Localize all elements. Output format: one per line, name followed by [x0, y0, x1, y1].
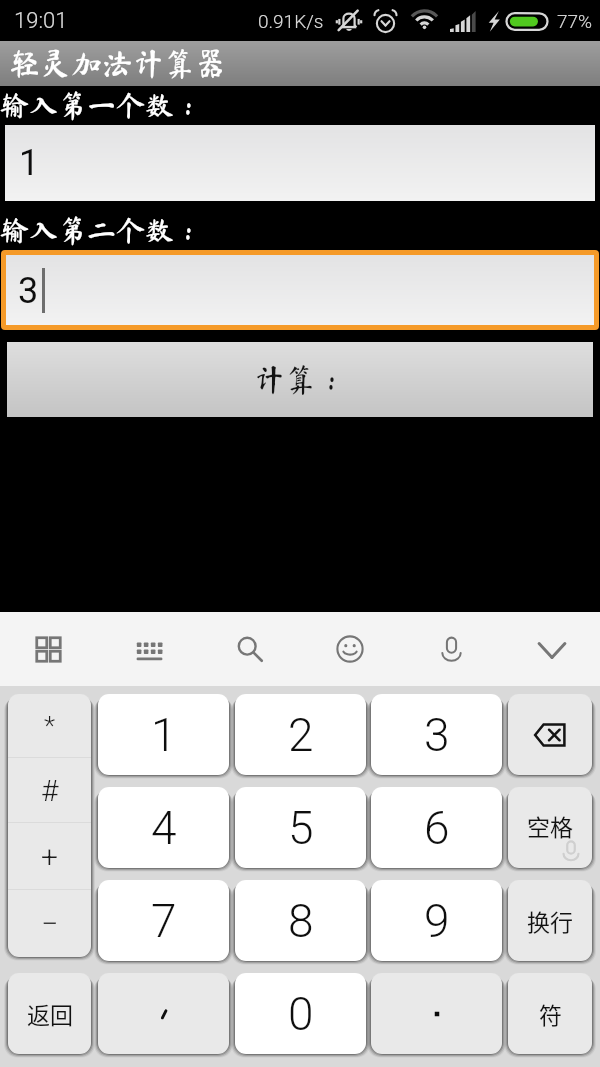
button[interactable]: 3 [6, 255, 594, 325]
button[interactable]: # [8, 758, 91, 822]
button[interactable]: Period [371, 973, 502, 1054]
staticText: 换行 [527, 904, 573, 937]
button[interactable]: Apps [20, 621, 76, 677]
button[interactable]: 9 [371, 880, 502, 961]
staticText: 输入第二个数： [0, 215, 204, 244]
button[interactable]: 7 [98, 880, 229, 961]
button[interactable]: 8 [235, 880, 366, 961]
staticText: − [41, 906, 59, 941]
button[interactable]: 空格 [508, 787, 592, 868]
staticText: 轻灵加法计算器 [9, 48, 226, 79]
button[interactable]: Hide keyboard [524, 621, 580, 677]
staticText: 空格 [527, 809, 573, 842]
staticText: 3 [424, 708, 450, 762]
staticText: 7 [151, 894, 177, 948]
button[interactable]: 3 [371, 694, 502, 775]
staticText: 0 [288, 987, 314, 1041]
staticText: 0.91K/s [258, 10, 324, 32]
staticText: 6 [424, 801, 450, 855]
button[interactable]: Backspace [508, 694, 592, 775]
staticText: * [44, 711, 56, 741]
staticText: # [41, 773, 59, 808]
staticText: 2 [288, 708, 314, 762]
button[interactable]: * [8, 694, 91, 757]
button[interactable]: Comma [98, 973, 229, 1054]
button[interactable]: 返回 [8, 973, 91, 1054]
staticText: 输入第一个数： [0, 90, 204, 119]
staticText: 5 [288, 801, 314, 855]
button[interactable]: 1 [5, 125, 595, 201]
button[interactable]: + [8, 823, 91, 889]
button[interactable]: 换行 [508, 880, 592, 961]
button[interactable]: 4 [98, 787, 229, 868]
staticText: 4 [151, 801, 177, 855]
staticText: 9 [424, 894, 450, 948]
button[interactable]: 0 [235, 973, 366, 1054]
staticText: 符 [539, 997, 562, 1030]
staticText: 19:01 [14, 8, 68, 34]
button[interactable]: Keyboard layout [121, 621, 177, 677]
staticText: 计算： [254, 364, 347, 395]
button[interactable]: 符 [508, 973, 592, 1054]
button[interactable]: 5 [235, 787, 366, 868]
staticText: 8 [288, 894, 314, 948]
button[interactable]: 计算： [7, 342, 593, 417]
button[interactable]: − [8, 890, 91, 957]
button[interactable]: 2 [235, 694, 366, 775]
button[interactable]: 6 [371, 787, 502, 868]
staticText: 1 [151, 708, 177, 762]
button[interactable]: Voice input [423, 621, 479, 677]
staticText: 77% [557, 10, 593, 32]
button[interactable]: Search [222, 621, 278, 677]
button[interactable]: Emoji [322, 621, 378, 677]
staticText: + [41, 839, 58, 874]
button[interactable]: 1 [98, 694, 229, 775]
staticText: 1 [19, 142, 40, 184]
staticText: 返回 [27, 997, 73, 1030]
staticText: 3 [18, 270, 39, 312]
